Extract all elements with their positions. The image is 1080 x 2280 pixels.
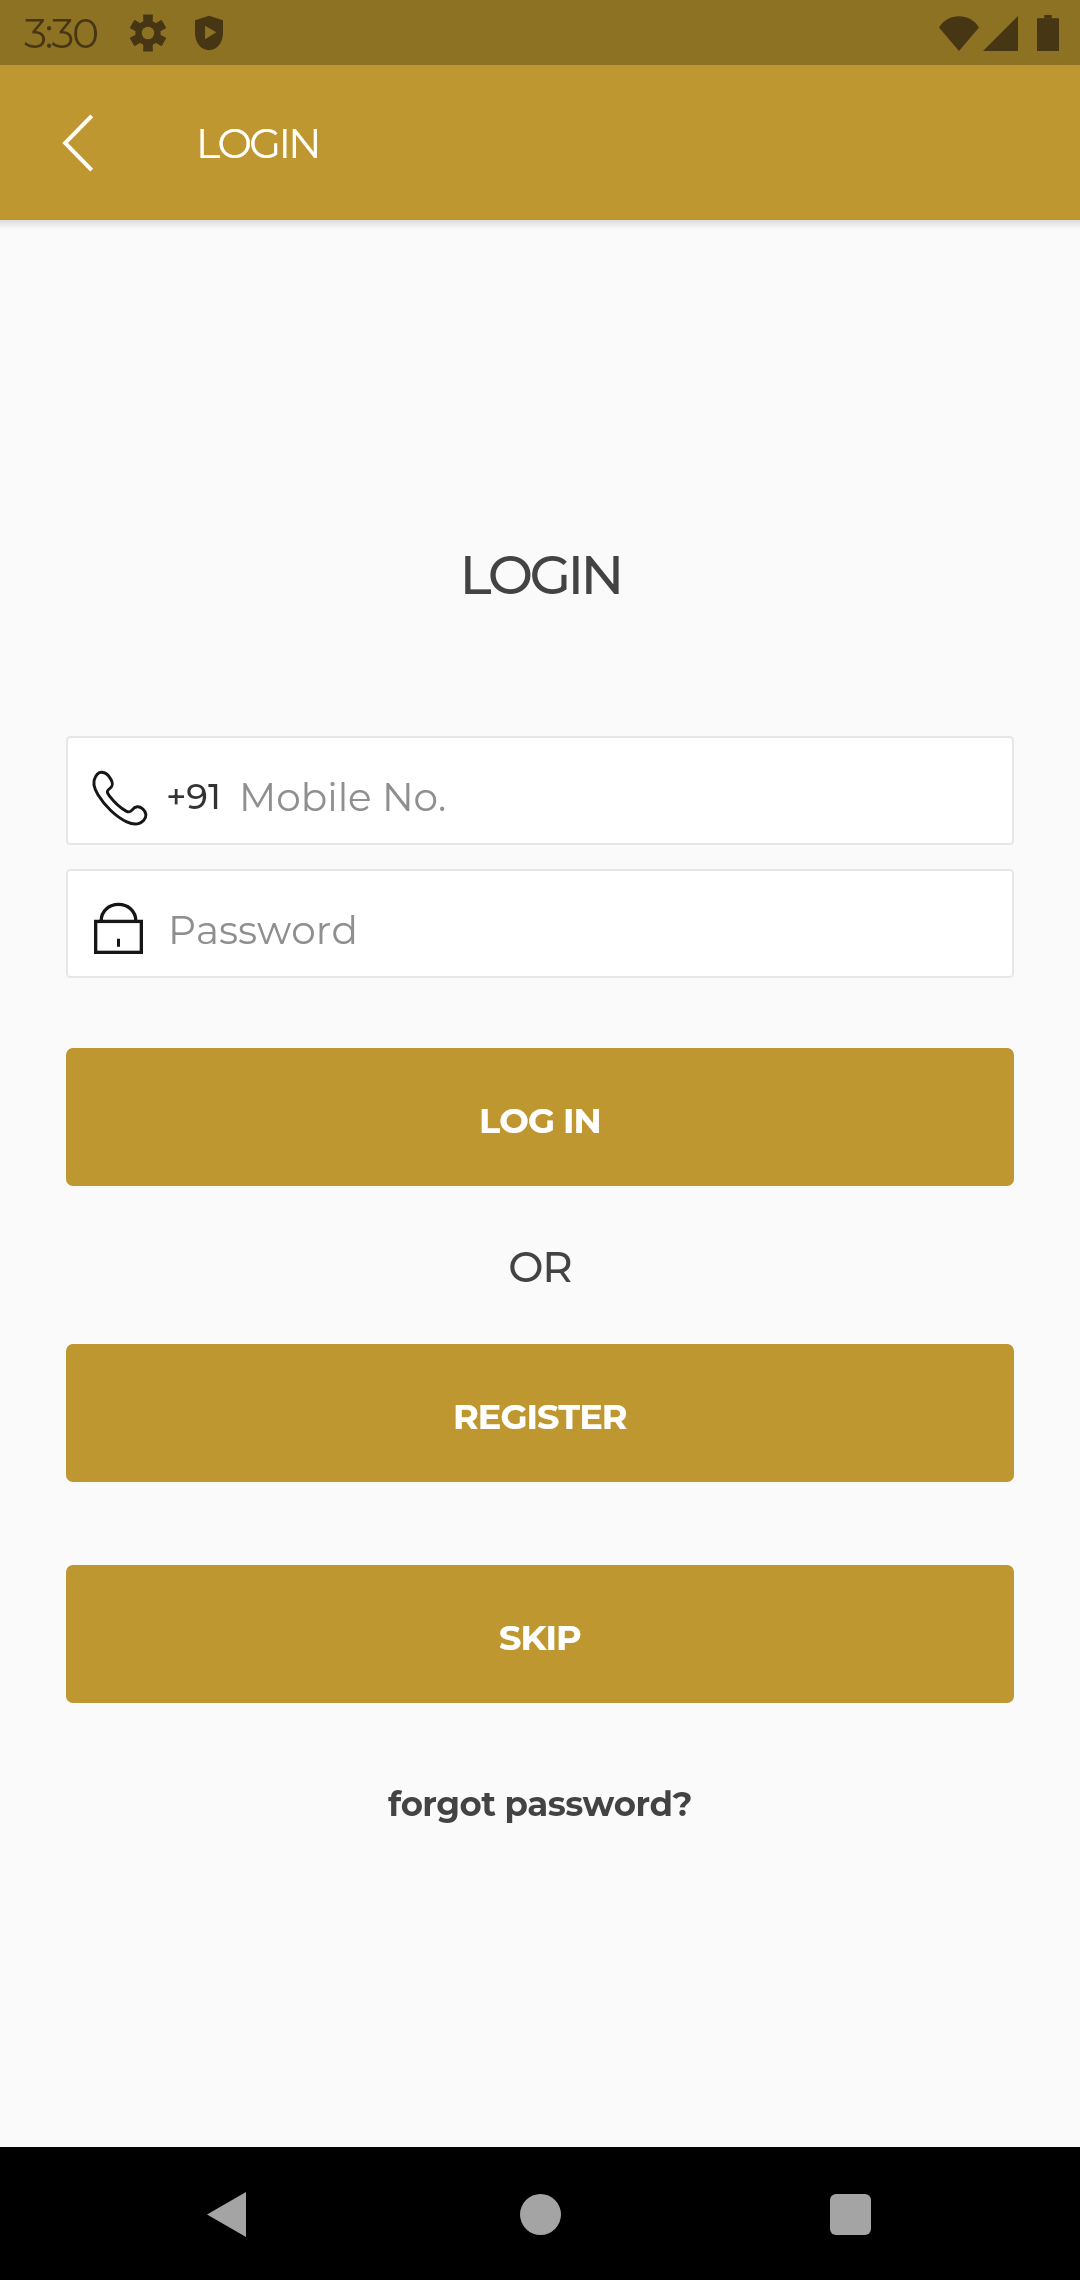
staticText: +91 [166,775,221,818]
button[interactable]: Navigate back [28,93,128,193]
button[interactable]: Home [480,2154,600,2274]
staticText: Password [168,906,358,954]
staticText: LOGIN [0,542,1080,608]
staticText: Mobile No. [239,773,447,821]
staticText: SKIP [499,1616,581,1659]
button[interactable]: Back [166,2154,286,2274]
button[interactable]: Password [66,869,1014,978]
staticText: REGISTER [453,1395,627,1438]
staticText: 3:30 [24,8,97,58]
staticText: LOGIN [196,118,319,168]
button[interactable]: +91 [66,736,1014,845]
button[interactable]: Recent apps [790,2154,910,2274]
button[interactable]: SKIP [66,1565,1014,1703]
staticText: LOG IN [479,1099,601,1142]
button[interactable]: REGISTER [66,1344,1014,1482]
staticText: OR [0,1241,1080,1292]
button[interactable]: forgot password? [0,1783,1080,1824]
button[interactable]: LOG IN [66,1048,1014,1186]
